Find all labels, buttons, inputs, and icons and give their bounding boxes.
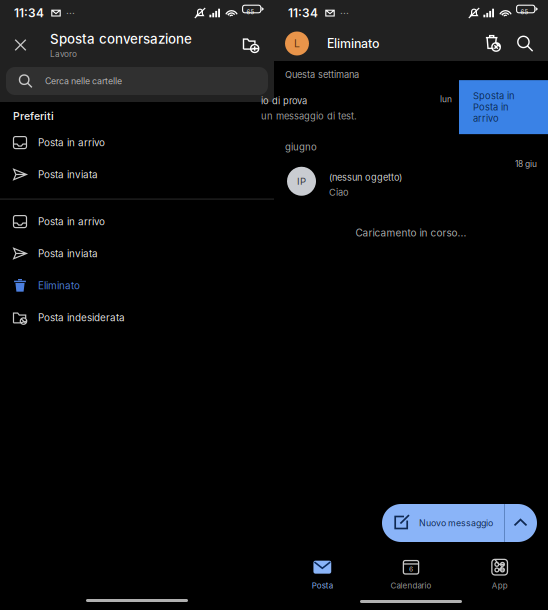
staticText: ··· xyxy=(340,7,349,19)
button[interactable]: Posta inviata xyxy=(0,238,274,270)
staticText: Posta inviata xyxy=(38,248,98,259)
button[interactable]: Account xyxy=(280,26,314,60)
staticText: Posta in arrivo xyxy=(38,137,105,148)
button[interactable]: Eliminato xyxy=(0,270,274,302)
staticText: 65 xyxy=(521,8,529,16)
button[interactable]: Posta indesiderata xyxy=(0,302,274,334)
button[interactable]: Posta in arrivo xyxy=(0,206,274,238)
staticText: Posta xyxy=(312,581,333,590)
button[interactable]: Posta in arrivo xyxy=(0,127,274,159)
staticText: Sposta conversazione xyxy=(50,31,192,47)
staticText: Calendario xyxy=(390,581,431,590)
button[interactable]: Posta inviata xyxy=(0,159,274,191)
button[interactable]: 18 giu xyxy=(274,153,548,215)
staticText: IP xyxy=(297,175,306,187)
staticText: Posta in arrivo xyxy=(38,216,105,227)
button[interactable]: App xyxy=(455,554,544,594)
staticText: lun xyxy=(440,94,452,104)
staticText: Eliminato xyxy=(327,36,379,51)
staticText: 11:34 xyxy=(14,6,44,20)
staticText: ··· xyxy=(66,7,75,19)
staticText: Posta indesiderata xyxy=(38,312,125,323)
staticText: L xyxy=(294,37,300,50)
staticText: Caricamento in corso... xyxy=(355,227,466,239)
staticText: 11:34 xyxy=(288,6,318,20)
button[interactable]: Svuota cartella xyxy=(477,28,509,58)
staticText: Questa settimana xyxy=(285,69,359,80)
staticText: giugno xyxy=(285,141,317,153)
staticText: Posta inviata xyxy=(38,169,98,180)
staticText: 6 xyxy=(409,565,413,573)
button[interactable]: Nuova cartella xyxy=(236,30,266,60)
staticText: Ciao xyxy=(329,187,349,198)
staticText: Cerca nelle cartelle xyxy=(45,76,122,86)
staticText: Sposta in Posta in arrivo xyxy=(473,90,515,124)
staticText: App xyxy=(492,581,508,590)
button[interactable]: 6 xyxy=(367,554,455,594)
button[interactable]: Cerca xyxy=(509,28,541,58)
staticText: (nessun oggetto) xyxy=(329,172,402,183)
staticText: Preferiti xyxy=(13,110,54,123)
button[interactable]: Cerca nelle cartelle xyxy=(0,64,274,102)
button[interactable]: Nuovo messaggio xyxy=(382,504,537,542)
button[interactable]: Posta xyxy=(278,554,367,594)
staticText: 65 xyxy=(247,8,255,16)
staticText: Nuovo messaggio xyxy=(419,518,493,528)
button[interactable]: Chiudi xyxy=(4,30,37,60)
staticText: Lavoro xyxy=(50,49,77,59)
staticText: io di prova xyxy=(261,95,307,106)
staticText: un messaggio di test. xyxy=(261,110,357,122)
staticText: 18 giu xyxy=(515,159,537,169)
staticText: Eliminato xyxy=(38,280,80,291)
